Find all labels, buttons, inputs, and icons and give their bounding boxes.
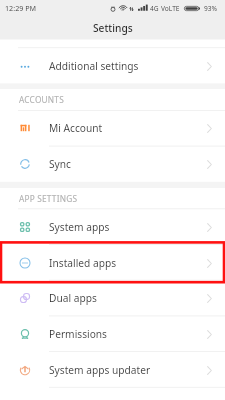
button[interactable]: Dual apps	[0, 280, 225, 316]
staticText: Mi Account	[49, 121, 103, 135]
button[interactable]: Permissions	[0, 316, 225, 352]
staticText: System apps	[49, 220, 110, 234]
staticText: 93%	[204, 4, 218, 13]
button[interactable]: Installed apps	[0, 245, 225, 281]
staticText: Permissions	[49, 327, 107, 341]
button[interactable]: Mi Account	[0, 110, 225, 146]
staticText: Sync	[49, 157, 71, 171]
staticText: Additional settings	[49, 59, 139, 73]
staticText: APP SETTINGS	[19, 193, 78, 204]
staticText: ACCOUNTS	[19, 94, 64, 105]
staticText: Installed apps	[49, 256, 117, 270]
button[interactable]: Additional settings	[0, 48, 225, 84]
staticText: Dual apps	[49, 291, 97, 305]
staticText: 12:29 PM	[5, 3, 37, 13]
staticText: VoLTE	[161, 4, 180, 13]
button[interactable]: System apps	[0, 209, 225, 245]
button[interactable]: System apps updater	[0, 352, 225, 388]
staticText: System apps updater	[49, 363, 151, 377]
staticText: 4G	[150, 4, 159, 13]
button[interactable]: Sync	[0, 146, 225, 182]
staticText: Settings	[93, 21, 133, 35]
